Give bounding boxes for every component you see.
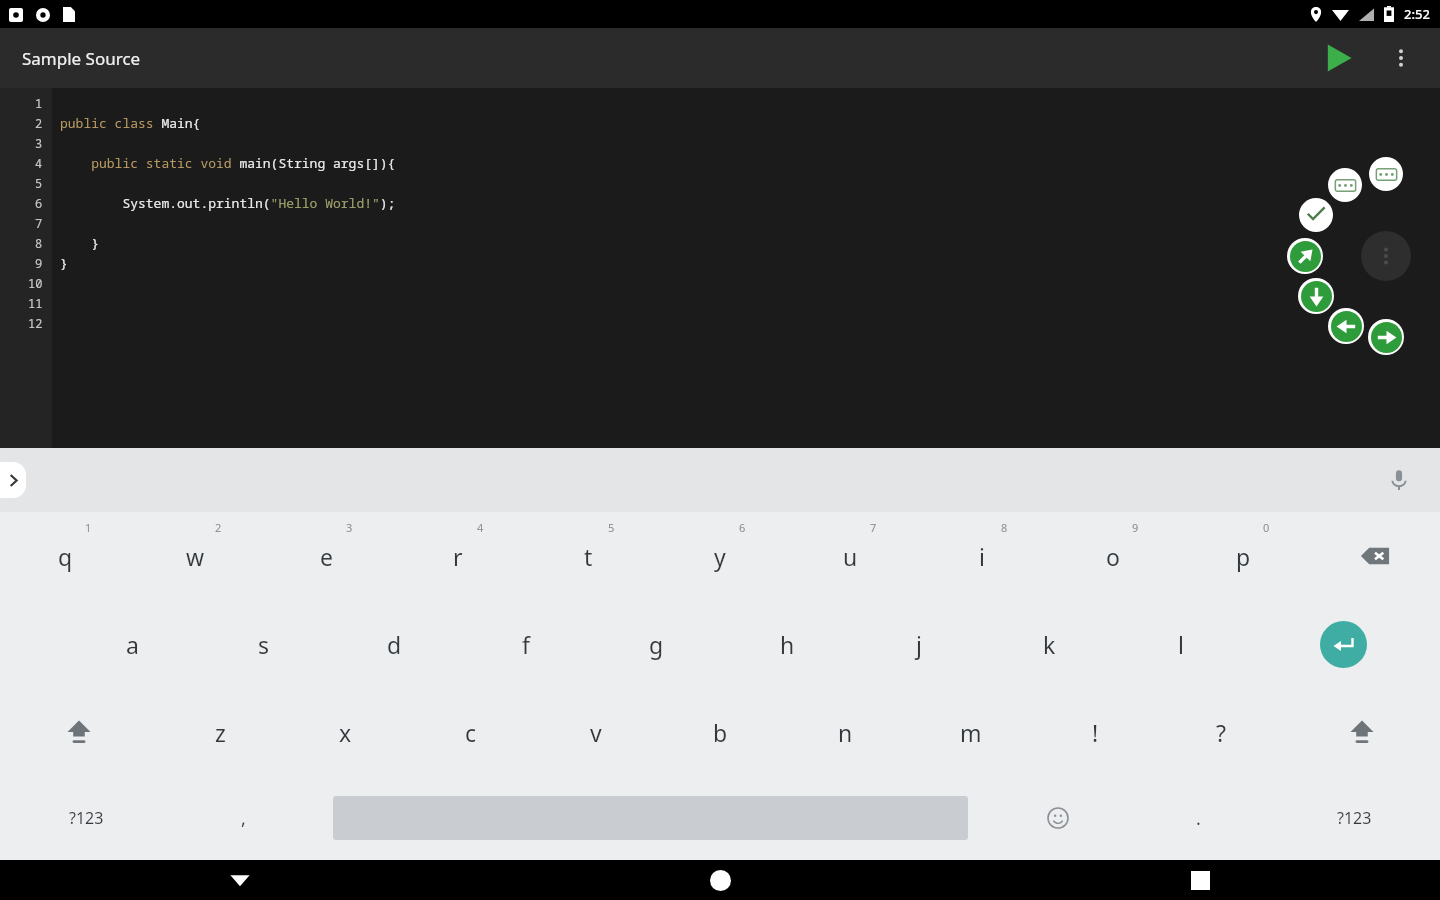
staticText: u	[843, 541, 858, 572]
staticText: m	[960, 717, 982, 748]
button[interactable]: Keyboard	[1328, 168, 1362, 202]
button[interactable]: t	[523, 512, 654, 600]
staticText: b	[713, 717, 728, 748]
staticText: 2	[35, 115, 43, 131]
staticText: q	[58, 541, 73, 572]
staticText: o	[1106, 541, 1120, 572]
staticText: 11	[28, 295, 43, 311]
button[interactable]: Recents	[960, 860, 1440, 900]
button[interactable]: k	[984, 600, 1115, 688]
button[interactable]: ?	[1158, 688, 1283, 776]
button[interactable]: Hide keyboard	[0, 860, 480, 900]
button[interactable]: n	[783, 688, 908, 776]
button[interactable]: Space	[313, 776, 988, 860]
button[interactable]: a	[67, 600, 198, 688]
staticText: k	[1043, 629, 1056, 660]
button[interactable]: r	[392, 512, 523, 600]
button[interactable]: Left	[1328, 308, 1364, 344]
staticText: 7	[35, 215, 43, 231]
button[interactable]: !	[1033, 688, 1158, 776]
staticText: 1	[85, 520, 92, 535]
staticText: w	[186, 541, 205, 572]
button[interactable]: z	[158, 688, 283, 776]
staticText: y	[714, 541, 726, 572]
button[interactable]: More options	[1376, 33, 1426, 83]
staticText: 6	[35, 195, 43, 211]
button[interactable]: q	[0, 512, 130, 600]
staticText: g	[649, 629, 664, 660]
button[interactable]: l	[1115, 600, 1246, 688]
staticText: .	[1196, 806, 1201, 831]
staticText: 5	[608, 520, 615, 535]
staticText: 3	[346, 520, 353, 535]
button[interactable]: c	[408, 688, 533, 776]
button[interactable]: ,	[173, 776, 313, 860]
button[interactable]: Voice input	[1378, 459, 1420, 501]
staticText: ?123	[69, 807, 104, 829]
button[interactable]: x	[283, 688, 408, 776]
staticText: 2	[215, 520, 222, 535]
button[interactable]: Shift	[0, 688, 158, 776]
button[interactable]: m	[908, 688, 1033, 776]
button[interactable]: u	[785, 512, 916, 600]
staticText: f	[522, 629, 530, 660]
staticText: }	[60, 234, 100, 252]
button[interactable]: h	[722, 600, 853, 688]
button[interactable]: Down	[1298, 278, 1334, 314]
button[interactable]: y	[654, 512, 785, 600]
staticText: 4	[477, 520, 484, 535]
button[interactable]: i	[916, 512, 1047, 600]
staticText: public static void main(String args[]){	[60, 154, 396, 172]
button[interactable]: Emoji	[988, 776, 1128, 860]
button[interactable]: Home	[480, 860, 960, 900]
button[interactable]: Right	[1368, 319, 1404, 355]
button[interactable]: Enter	[1246, 600, 1440, 688]
staticText: 9	[35, 255, 43, 271]
button[interactable]: Tab	[1299, 198, 1333, 232]
button[interactable]: ?123	[1268, 776, 1440, 860]
button[interactable]: ?123	[0, 776, 173, 860]
staticText: 9	[1132, 520, 1139, 535]
button[interactable]: Backspace	[1309, 512, 1440, 600]
staticText: !	[1092, 717, 1099, 748]
staticText: c	[465, 717, 477, 748]
staticText: i	[979, 541, 985, 572]
staticText: 6	[739, 520, 746, 535]
staticText: d	[387, 629, 402, 660]
button[interactable]: Shift	[1283, 688, 1440, 776]
button[interactable]: w	[130, 512, 261, 600]
button[interactable]: Menu	[1361, 231, 1411, 281]
staticText: z	[215, 717, 226, 748]
button[interactable]: e	[261, 512, 392, 600]
button[interactable]: g	[591, 600, 722, 688]
staticText: ?123	[1337, 807, 1372, 829]
staticText: h	[780, 629, 795, 660]
staticText: ,	[241, 806, 246, 831]
staticText: e	[320, 541, 333, 572]
staticText: p	[1236, 541, 1251, 572]
staticText: x	[339, 717, 352, 748]
button[interactable]: s	[198, 600, 329, 688]
button[interactable]: b	[658, 688, 783, 776]
button[interactable]: f	[460, 600, 591, 688]
button[interactable]: v	[533, 688, 658, 776]
staticText: n	[838, 717, 853, 748]
staticText: 1	[35, 95, 43, 111]
button[interactable]: d	[329, 600, 460, 688]
staticText: 8	[1001, 520, 1008, 535]
button[interactable]: Expand suggestions	[0, 462, 26, 498]
staticText: j	[916, 629, 922, 660]
staticText: Sample Source	[22, 47, 141, 70]
staticText: 4	[35, 155, 43, 171]
button[interactable]: Up	[1287, 238, 1323, 274]
button[interactable]: Run	[1314, 33, 1364, 83]
staticText: l	[1178, 629, 1184, 660]
staticText: 0	[1263, 520, 1270, 535]
staticText: r	[453, 541, 463, 572]
button[interactable]: j	[853, 600, 984, 688]
button[interactable]: p	[1178, 512, 1309, 600]
button[interactable]: Keyboard	[1369, 157, 1403, 191]
button[interactable]: o	[1047, 512, 1178, 600]
staticText: 3	[35, 135, 43, 151]
